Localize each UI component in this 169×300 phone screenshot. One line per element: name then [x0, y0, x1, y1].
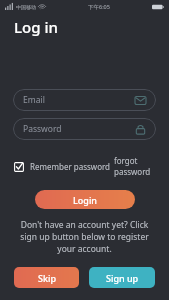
staticText: Log in [14, 17, 58, 37]
button[interactable]: Password [13, 118, 156, 140]
staticText: 下午6:05 [88, 3, 110, 11]
other: Password [135, 124, 146, 135]
staticText: Password [23, 123, 62, 135]
button[interactable]: Email [13, 89, 156, 111]
staticText: Don't have an account yet? Click sign up… [18, 219, 151, 255]
staticText: Sign up [106, 272, 139, 284]
staticText: Remember password [30, 161, 111, 172]
staticText: Skip [38, 272, 56, 284]
other: Email [135, 95, 146, 106]
other: Remember password checkbox [14, 162, 24, 172]
button[interactable]: Login [35, 190, 135, 209]
staticText: Email [23, 94, 45, 106]
button[interactable]: forgot password [112, 152, 156, 180]
button[interactable]: Sign up [89, 267, 155, 288]
button[interactable]: Skip [14, 267, 79, 288]
staticText: forgot password [114, 155, 154, 177]
button[interactable]: Remember password checkbox [13, 158, 112, 175]
staticText: 中国移动 [16, 4, 36, 10]
staticText: Login [73, 194, 97, 206]
